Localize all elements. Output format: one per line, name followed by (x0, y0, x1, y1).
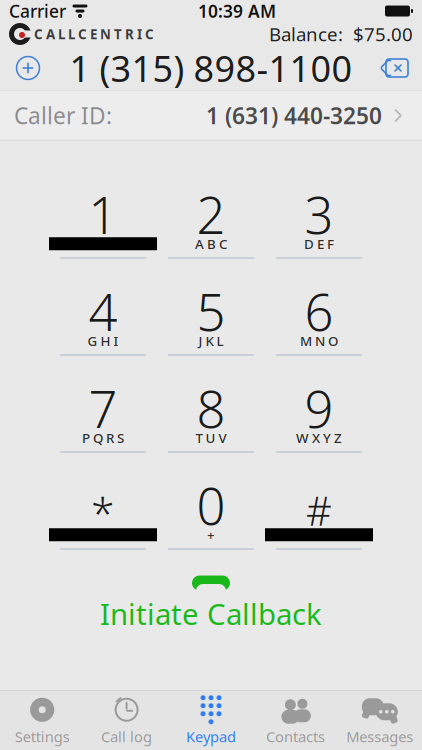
button[interactable]: 7 (49, 383, 157, 455)
staticText: 7 (88, 375, 117, 442)
staticText: G H I (87, 332, 118, 350)
staticText: 9 (304, 375, 333, 442)
staticText: # (306, 484, 332, 537)
staticText: 0 (196, 472, 225, 539)
staticText: Initiate Callback (100, 594, 322, 633)
button[interactable]: 6 (265, 286, 373, 358)
button[interactable]: Call log (84, 691, 169, 749)
button[interactable]: 3 (265, 189, 373, 261)
staticText: 1 (315) 898-1100 (69, 44, 352, 92)
button[interactable]: Initiate Callback (96, 574, 326, 634)
staticText: Call log (101, 727, 152, 746)
staticText: Settings (15, 727, 70, 746)
staticText: 6 (304, 278, 333, 345)
button[interactable]: 4 (49, 286, 157, 358)
staticText: Carrier (9, 0, 66, 22)
staticText: T U V (195, 429, 226, 447)
staticText: + (207, 526, 215, 544)
staticText: 5 (196, 278, 225, 345)
button[interactable]: Settings (0, 691, 84, 749)
staticText: 1 (88, 181, 117, 248)
staticText: 2 (196, 181, 225, 248)
staticText: Contacts (266, 727, 325, 746)
button[interactable]: # (265, 480, 373, 552)
button[interactable]: 8 (157, 383, 265, 455)
staticText: 3 (304, 181, 333, 248)
button[interactable]: 0 (157, 480, 265, 552)
staticText: * (91, 484, 115, 541)
staticText: 4 (88, 278, 117, 345)
staticText: 8 (196, 375, 225, 442)
button[interactable]: Delete (366, 48, 422, 88)
button[interactable]: Contacts (253, 691, 338, 749)
staticText: 1 (631) 440-3250 (206, 100, 382, 130)
button[interactable]: 2 (157, 189, 265, 261)
staticText: C A L L C E N T R I C (34, 25, 154, 43)
staticText: Caller ID: (14, 100, 112, 130)
staticText: 10:39 AM (198, 0, 276, 22)
staticText: D E F (304, 235, 334, 253)
button[interactable]: Messages (338, 691, 422, 749)
button[interactable]: 9 (265, 383, 373, 455)
button[interactable]: 5 (157, 286, 265, 358)
button[interactable]: Caller ID: (0, 90, 422, 140)
button[interactable]: Keypad (169, 691, 253, 749)
button[interactable]: * (49, 480, 157, 552)
staticText: M N O (300, 332, 338, 350)
staticText: Messages (346, 727, 413, 746)
staticText: Balance: $75.00 (269, 22, 413, 46)
button[interactable]: 1 (49, 189, 157, 261)
staticText: Keypad (186, 727, 236, 746)
staticText: W X Y Z (296, 429, 342, 447)
button[interactable]: Add contact (0, 48, 56, 88)
staticText: A B C (195, 235, 227, 253)
staticText: P Q R S (82, 429, 124, 447)
staticText: J K L (198, 332, 223, 350)
